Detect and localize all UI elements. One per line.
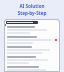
staticText: AI Solution bbox=[0, 3, 64, 9]
button[interactable]: Solution preview bbox=[5, 20, 59, 71]
button[interactable]: Solution heading bbox=[6, 21, 38, 24]
staticText: Step-by-Step bbox=[0, 10, 64, 16]
